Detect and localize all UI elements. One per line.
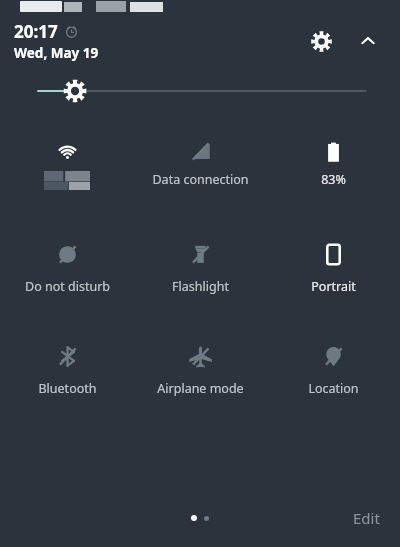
button[interactable]: 83% (267, 138, 400, 188)
button[interactable]: Portrait (267, 241, 400, 295)
button[interactable]: Brightness (0, 68, 400, 114)
button[interactable]: Settings (302, 22, 340, 60)
staticText: Location (308, 380, 359, 397)
staticText: Portrait (311, 278, 356, 295)
staticText: Flashlight (172, 278, 229, 295)
button[interactable]: Edit (347, 502, 386, 534)
staticText: 20:17 (14, 20, 58, 43)
staticText: Edit (353, 508, 380, 528)
staticText: Do not disturb (25, 278, 110, 295)
staticText: Airplane mode (157, 380, 244, 397)
button[interactable]: Bluetooth (0, 343, 134, 397)
staticText: Bluetooth (38, 380, 97, 397)
button[interactable]: Collapse (350, 23, 386, 59)
button[interactable]: Data connection (134, 138, 267, 188)
button[interactable]: Wi-Fi (0, 138, 134, 191)
staticText: 83% (321, 171, 346, 188)
staticText: Data connection (152, 171, 249, 188)
button[interactable]: Location (267, 343, 400, 397)
staticText: Wed, May 19 (14, 44, 99, 62)
button[interactable]: Flashlight (134, 241, 267, 295)
button[interactable]: Do not disturb (0, 241, 134, 295)
button[interactable]: Airplane mode (134, 343, 267, 397)
